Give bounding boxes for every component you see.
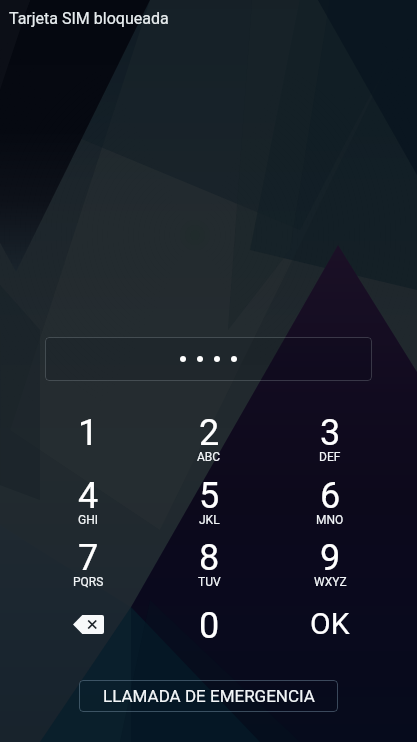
staticText: LLAMADA DE EMERGENCIA — [103, 686, 315, 706]
button[interactable]: OK — [270, 602, 390, 672]
staticText: MNO — [316, 513, 344, 527]
button[interactable] — [45, 337, 372, 381]
button[interactable]: 7 — [28, 533, 148, 603]
staticText: GHI — [78, 513, 98, 527]
staticText: ABC — [197, 450, 221, 464]
staticText: 1 — [78, 412, 99, 454]
staticText: DEF — [319, 450, 341, 464]
staticText: TUV — [198, 575, 221, 589]
staticText: 6 — [320, 475, 341, 517]
staticText: JKL — [199, 513, 220, 527]
staticText: 2 — [199, 412, 220, 454]
staticText: 8 — [199, 537, 220, 579]
staticText: 5 — [199, 475, 220, 517]
button[interactable]: 1 — [28, 408, 148, 478]
staticText: Tarjeta SIM bloqueada — [9, 9, 169, 28]
button[interactable]: 5 — [149, 471, 269, 541]
staticText: 3 — [320, 412, 341, 454]
staticText: 4 — [78, 475, 99, 517]
button[interactable]: 8 — [149, 533, 269, 603]
button[interactable]: 3 — [270, 408, 390, 478]
button[interactable]: 4 — [28, 471, 148, 541]
button[interactable]: 0 — [149, 601, 269, 671]
button[interactable]: 2 — [149, 408, 269, 478]
button[interactable]: 9 — [270, 533, 390, 603]
staticText: 7 — [78, 537, 99, 579]
button[interactable]: Borrar — [28, 593, 148, 655]
button[interactable]: 6 — [270, 471, 390, 541]
staticText: 9 — [320, 537, 341, 579]
staticText: OK — [310, 606, 350, 641]
staticText: 0 — [199, 605, 220, 647]
staticText: PQRS — [73, 575, 104, 589]
button[interactable]: LLAMADA DE EMERGENCIA — [79, 680, 338, 712]
staticText: WXYZ — [314, 575, 347, 589]
